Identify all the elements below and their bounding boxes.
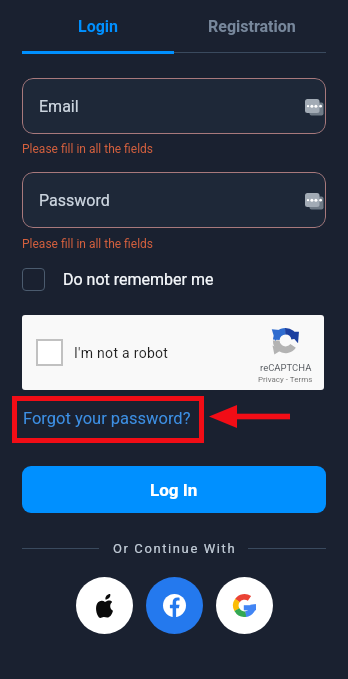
button[interactable]: Sign in with Apple: [76, 577, 133, 634]
staticText: Please fill in all the fields: [22, 142, 154, 156]
button[interactable]: Forgot your password?: [21, 409, 193, 428]
staticText: I'm not a robot: [74, 345, 169, 361]
button[interactable]: Sign in with Google: [216, 577, 273, 634]
staticText: Log In: [150, 480, 198, 500]
button[interactable]: Do not remember me: [22, 268, 214, 291]
staticText: Login: [78, 17, 119, 36]
staticText: Email: [39, 97, 79, 116]
button[interactable]: Log In: [22, 466, 326, 513]
staticText: Do not remember me: [63, 270, 214, 289]
staticText: Forgot your password?: [23, 409, 191, 428]
staticText: Or Continue With: [113, 541, 237, 556]
staticText: reCAPTCHA: [260, 362, 312, 373]
staticText: Please fill in all the fields: [22, 237, 154, 251]
button[interactable]: Registration: [174, 0, 326, 54]
staticText: Privacy - Terms: [258, 375, 313, 384]
button[interactable]: Login: [22, 0, 174, 54]
button[interactable]: I'm not a robot: [22, 315, 324, 390]
button[interactable]: Sign in with Facebook: [146, 577, 203, 634]
button[interactable]: Password: [22, 172, 326, 228]
staticText: Password: [39, 191, 110, 210]
button[interactable]: Email: [22, 78, 326, 134]
staticText: Registration: [208, 17, 296, 36]
